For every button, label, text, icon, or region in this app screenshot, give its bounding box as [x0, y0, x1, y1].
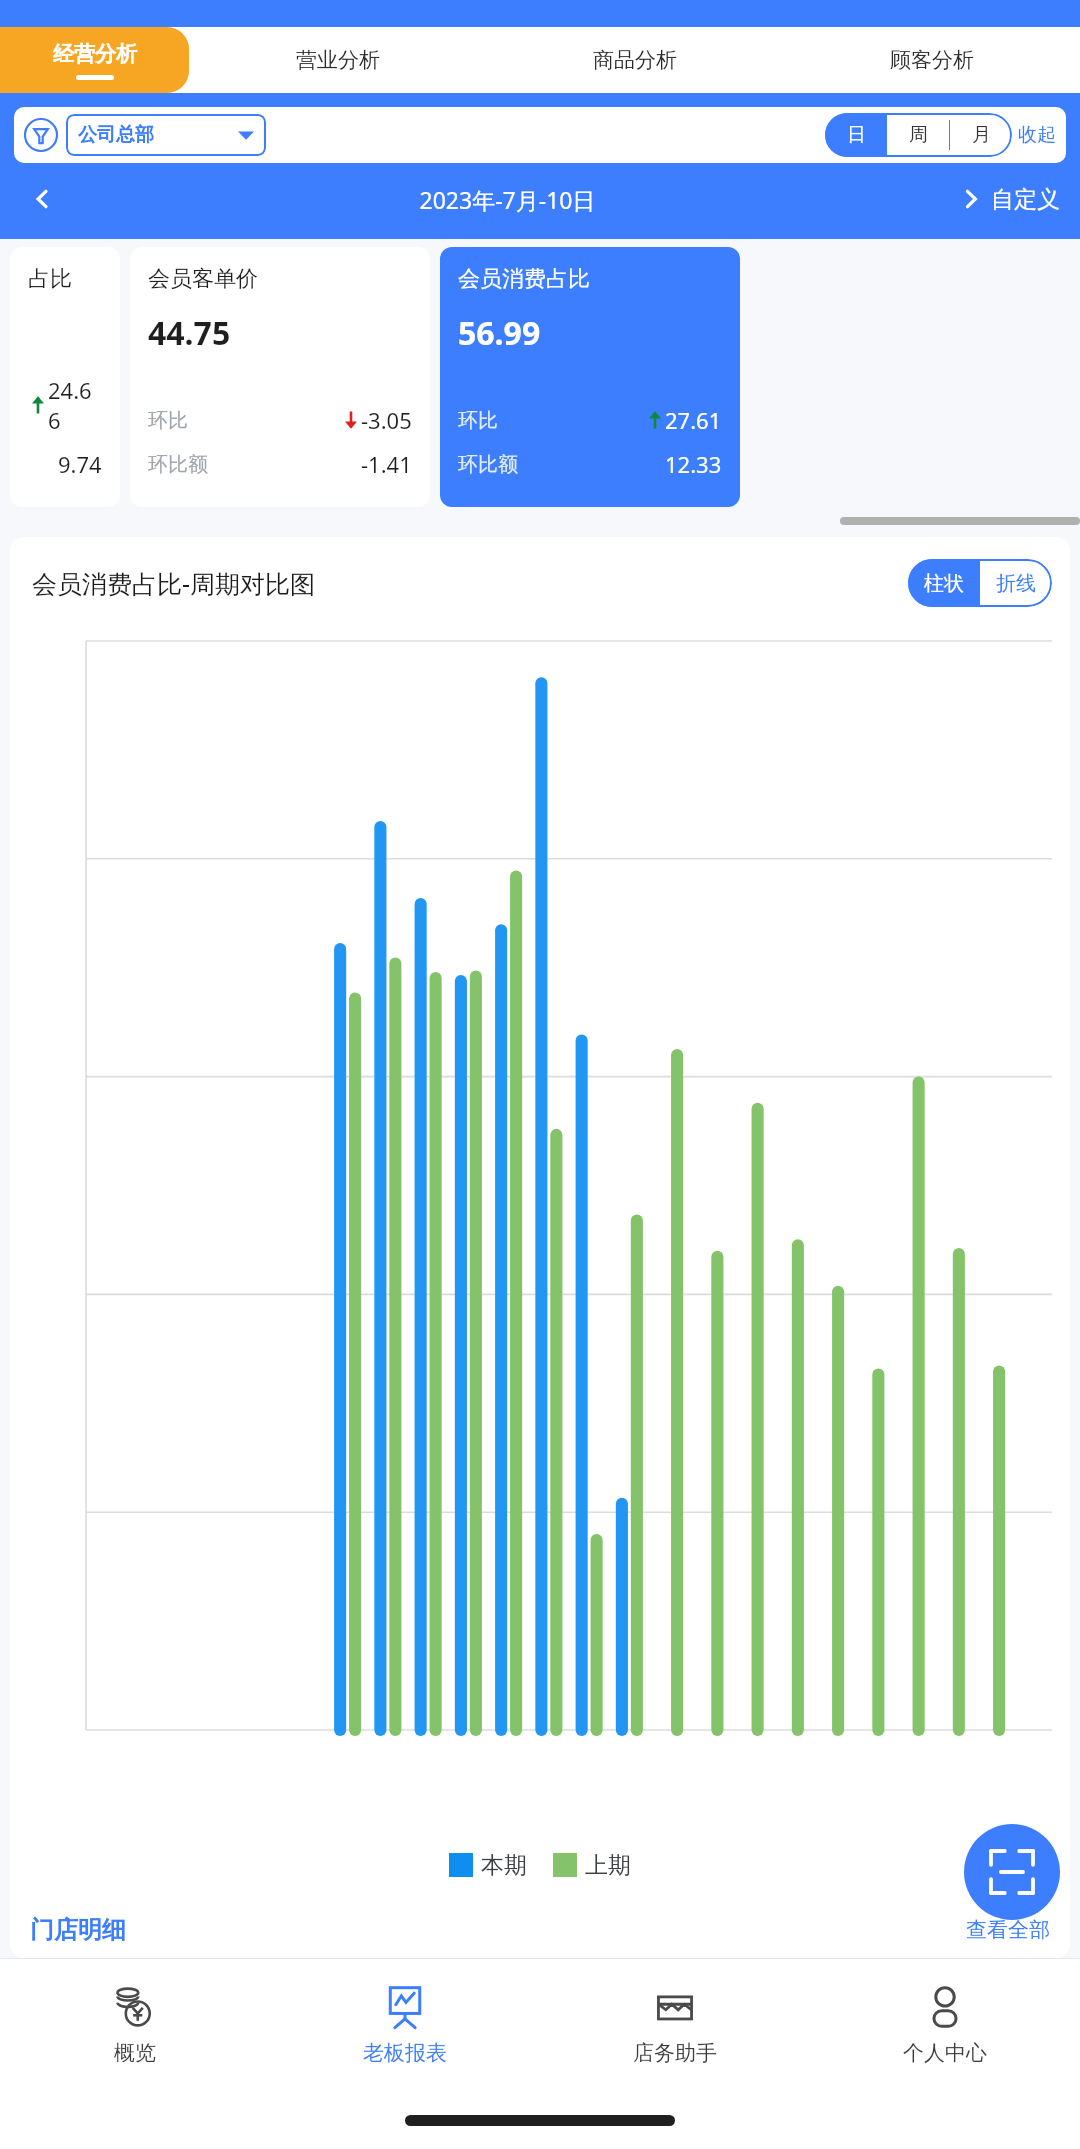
staticText: 个人中心 — [903, 2040, 987, 2066]
button[interactable]: 会员客单价 — [130, 247, 430, 507]
staticText: 环比 — [458, 408, 498, 433]
staticText: 月 — [972, 123, 991, 147]
staticText: 日 — [847, 123, 866, 147]
button[interactable]: Scan — [964, 1824, 1060, 1920]
button[interactable]: 占比 — [10, 247, 120, 507]
staticText: 折线 — [996, 571, 1036, 596]
staticText: 公司总部 — [78, 123, 154, 147]
button[interactable]: 自定义 — [991, 185, 1060, 214]
staticText: 本期 — [481, 1851, 527, 1880]
staticText: 收起 — [1018, 123, 1056, 147]
staticText: 环比 — [148, 408, 188, 433]
button[interactable]: 门店明细 — [30, 1902, 1050, 1958]
staticText: 会员客单价 — [148, 265, 258, 293]
staticText: 老板报表 — [363, 2040, 447, 2066]
staticText: 概览 — [114, 2040, 156, 2066]
button[interactable]: Next day — [951, 179, 991, 219]
staticText: 店务助手 — [633, 2040, 717, 2066]
button[interactable]: 柱状 — [908, 559, 980, 607]
button[interactable]: 个人中心 — [810, 1959, 1080, 2091]
staticText: -3.05 — [361, 405, 412, 435]
staticText: 环比额 — [458, 452, 518, 477]
staticText: -1.41 — [361, 449, 412, 479]
staticText: 12.33 — [665, 449, 722, 479]
staticText: 查看全部 — [966, 1917, 1050, 1943]
button[interactable]: 商品分析 — [486, 27, 783, 93]
staticText: 柱状 — [924, 571, 964, 596]
button[interactable]: 营业分析 — [189, 27, 486, 93]
button[interactable]: 概览 — [0, 1959, 270, 2091]
staticText: 44.75 — [148, 311, 231, 355]
button[interactable]: 折线 — [980, 559, 1052, 607]
button[interactable]: 公司总部 — [66, 114, 266, 156]
staticText: 27.61 — [665, 405, 722, 435]
staticText: 周 — [909, 123, 928, 147]
staticText: 环比额 — [148, 452, 208, 477]
staticText: 占比 — [28, 265, 72, 293]
staticText: 顾客分析 — [890, 47, 974, 73]
staticText: 经营分析 — [53, 41, 137, 67]
staticText: 自定义 — [991, 185, 1060, 214]
button[interactable]: 月 — [950, 113, 1012, 157]
staticText: 会员消费占比-周期对比图 — [32, 566, 316, 600]
button[interactable]: 经营分析 — [0, 27, 189, 93]
staticText: 2023年-7月-10日 — [64, 184, 951, 215]
staticText: 门店明细 — [30, 1915, 126, 1945]
button[interactable]: Filter — [24, 118, 58, 152]
button[interactable]: 周 — [887, 113, 949, 157]
button[interactable]: 日 — [825, 113, 887, 157]
staticText: 会员消费占比 — [458, 265, 590, 293]
staticText: 上期 — [585, 1851, 631, 1880]
button[interactable]: 会员消费占比 — [440, 247, 740, 507]
button[interactable]: 顾客分析 — [783, 27, 1080, 93]
staticText: 9.74 — [58, 449, 102, 479]
button[interactable]: 老板报表 — [270, 1959, 540, 2091]
button[interactable]: Previous day — [20, 177, 64, 221]
staticText: 24.66 — [48, 375, 102, 435]
staticText: 商品分析 — [593, 47, 677, 73]
staticText: 营业分析 — [296, 47, 380, 73]
button[interactable]: 店务助手 — [540, 1959, 810, 2091]
button[interactable]: 收起 — [1018, 123, 1056, 147]
staticText: 56.99 — [458, 311, 541, 355]
